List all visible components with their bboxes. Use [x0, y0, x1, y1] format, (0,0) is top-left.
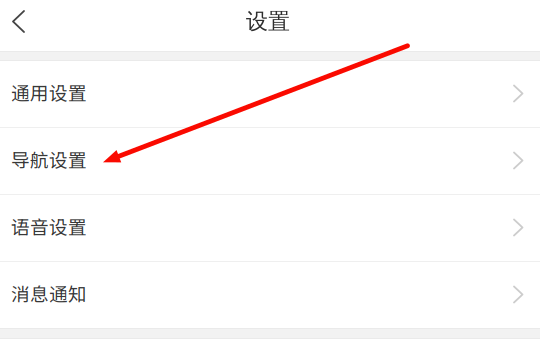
button[interactable]: 通用设置 — [0, 61, 540, 127]
staticText: 语音设置 — [11, 212, 87, 239]
staticText: 导航设置 — [11, 145, 87, 172]
staticText: 设置 — [246, 8, 290, 35]
staticText: 消息通知 — [11, 279, 87, 306]
button[interactable]: 导航设置 — [0, 128, 540, 194]
staticText: 通用设置 — [11, 78, 87, 105]
button[interactable]: 语音设置 — [0, 195, 540, 261]
button[interactable]: Back — [0, 0, 44, 51]
button[interactable]: 消息通知 — [0, 262, 540, 328]
